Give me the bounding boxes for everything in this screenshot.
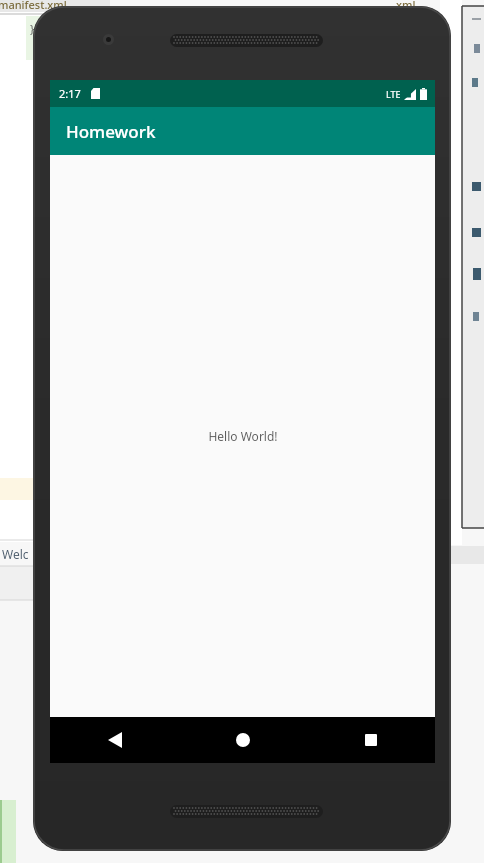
staticText: manifest.xml xyxy=(0,0,67,12)
staticText: Homework xyxy=(66,120,156,143)
button[interactable]: Recent apps xyxy=(307,717,435,763)
staticText: 2:17 xyxy=(59,86,81,101)
staticText: xml xyxy=(396,0,416,12)
button[interactable]: Home xyxy=(179,717,307,763)
staticText: Welc xyxy=(2,546,29,562)
button[interactable]: Back xyxy=(50,717,179,763)
staticText: LTE xyxy=(386,88,401,100)
button[interactable]: Homework xyxy=(50,107,435,155)
staticText: } xyxy=(30,21,35,36)
staticText: Hello World! xyxy=(208,428,278,444)
